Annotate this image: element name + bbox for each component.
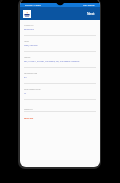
button[interactable]: Account No.	[24, 20, 96, 36]
staticText: 3:47 PM | 1.2KB/s	[25, 4, 41, 7]
staticText: 000000456	[24, 28, 34, 31]
staticText: MRS J VENUGO	[24, 44, 38, 47]
button[interactable]: Name	[24, 36, 96, 52]
staticText: 293, 14/296-1, PHASE-I, Purshikula, MR, …	[24, 60, 80, 63]
button[interactable]: Address	[24, 52, 96, 68]
staticText: LTE1 LTE2 80	[83, 4, 95, 7]
button[interactable]: App logo	[23, 10, 31, 18]
button[interactable]: Tariff Category/Code	[24, 84, 96, 100]
staticText: 0.0	[24, 76, 27, 79]
button[interactable]: Sanctioned Load	[24, 68, 96, 84]
button[interactable]: Next	[86, 9, 96, 18]
staticText: LT	[24, 92, 27, 95]
staticText: Send OTP	[24, 117, 34, 120]
staticText: Sanctioned Load	[24, 72, 38, 74]
staticText: Next	[87, 11, 95, 16]
staticText: Name	[24, 40, 29, 42]
staticText: Address	[24, 56, 31, 58]
staticText: Mobile No.:	[24, 108, 34, 110]
staticText: Tariff Category/Code	[24, 88, 41, 90]
button[interactable]: Send OTP	[24, 117, 34, 120]
staticText: Account No.	[24, 24, 34, 26]
